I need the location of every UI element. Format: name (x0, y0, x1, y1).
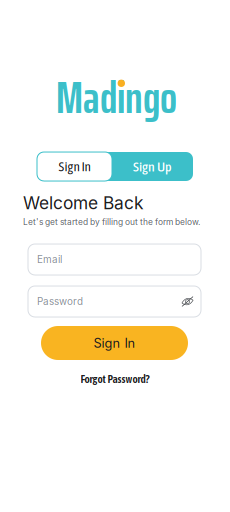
staticText: Sign In (58, 159, 90, 174)
staticText: Sign Up (133, 159, 172, 174)
staticText: Password (37, 295, 83, 307)
button[interactable]: Forgot Password? (55, 373, 175, 385)
button[interactable]: Sign In (41, 326, 188, 360)
staticText: Email (37, 253, 62, 265)
button[interactable]: Sign In (37, 152, 112, 181)
staticText: Forgot Password? (80, 373, 149, 385)
staticText: Sign In (93, 335, 135, 351)
button[interactable]: Sign Up (112, 152, 193, 181)
staticText: Welcome Back (23, 192, 144, 213)
staticText: Madingo (56, 63, 177, 132)
staticText: Let's get started by filling out the for… (23, 217, 200, 227)
